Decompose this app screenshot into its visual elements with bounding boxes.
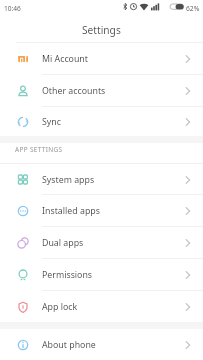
- button[interactable]: Sync: [0, 107, 203, 136]
- staticText: Settings: [82, 23, 121, 37]
- staticText: Dual apps: [42, 237, 84, 249]
- staticText: App lock: [42, 301, 78, 313]
- staticText: System apps: [42, 174, 95, 186]
- staticText: About phone: [42, 339, 96, 351]
- button[interactable]: App lock: [0, 291, 203, 322]
- staticText: Installed apps: [42, 205, 100, 217]
- staticText: 62%: [186, 4, 200, 13]
- button[interactable]: Dual apps: [0, 227, 203, 259]
- staticText: 10:46: [4, 4, 21, 13]
- staticText: Other accounts: [42, 85, 106, 97]
- staticText: APP SETTINGS: [15, 145, 63, 154]
- staticText: Sync: [42, 116, 61, 128]
- button[interactable]: About phone: [0, 329, 203, 360]
- button[interactable]: System apps: [0, 164, 203, 195]
- button[interactable]: Other accounts: [0, 75, 203, 107]
- button[interactable]: Permissions: [0, 259, 203, 291]
- button[interactable]: Installed apps: [0, 195, 203, 227]
- button[interactable]: Mi Account: [0, 43, 203, 75]
- staticText: Mi Account: [42, 53, 88, 65]
- staticText: Permissions: [42, 269, 93, 281]
